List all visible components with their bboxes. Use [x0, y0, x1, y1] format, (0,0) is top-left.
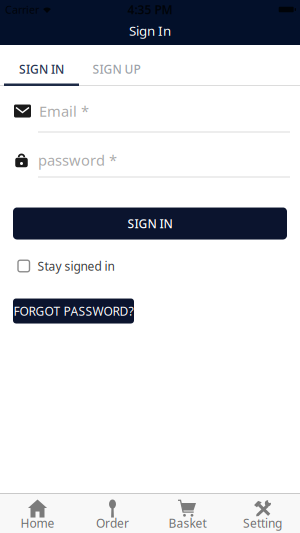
button[interactable]: SIGN UP — [79, 45, 154, 86]
button[interactable]: SIGN IN — [4, 45, 79, 86]
button[interactable]: SIGN IN — [13, 207, 287, 239]
staticText: Sign In — [129, 22, 171, 39]
staticText: Home — [20, 515, 54, 531]
staticText: password * — [38, 150, 117, 170]
button[interactable]: Setting — [225, 499, 300, 528]
button[interactable]: Home — [0, 499, 75, 528]
button[interactable]: Order — [75, 499, 150, 528]
staticText: SIGN IN — [127, 215, 172, 231]
button[interactable]: FORGOT PASSWORD? — [13, 298, 134, 323]
staticText: SIGN UP — [92, 61, 140, 77]
staticText: Stay signed in — [37, 258, 114, 274]
staticText: Setting — [243, 515, 282, 531]
staticText: 4:35 PM — [127, 1, 172, 17]
staticText: Carrier — [5, 2, 39, 17]
staticText: Basket — [168, 515, 206, 531]
staticText: SIGN IN — [19, 61, 64, 77]
button[interactable]: Basket — [150, 499, 225, 528]
staticText: Order — [96, 515, 129, 531]
staticText: Email * — [39, 101, 89, 121]
button[interactable]: Stay signed in — [0, 239, 300, 272]
staticText: FORGOT PASSWORD? — [13, 303, 133, 319]
